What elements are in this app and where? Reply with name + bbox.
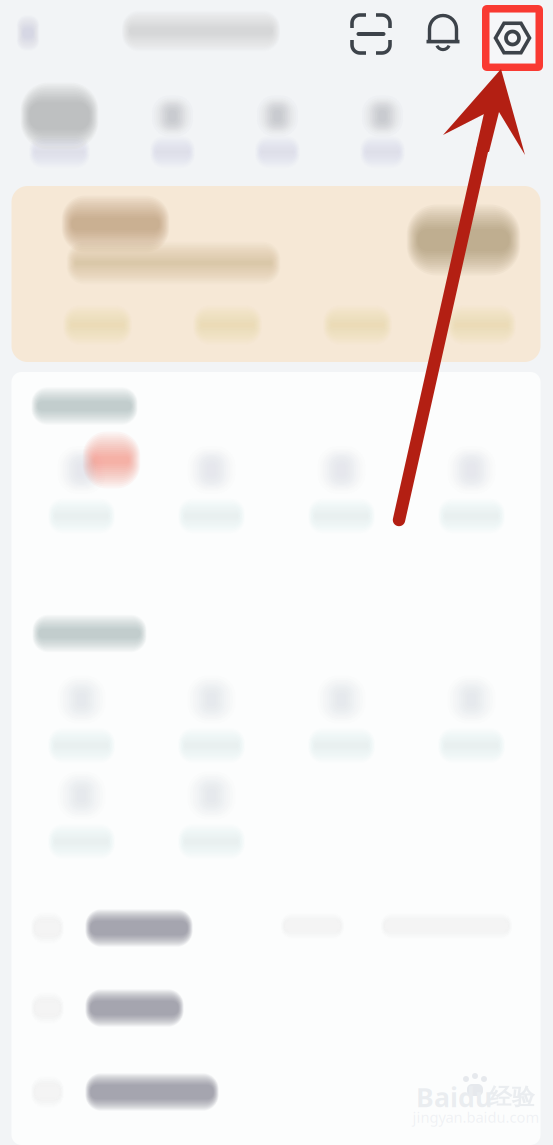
button[interactable] — [148, 434, 274, 534]
button[interactable]: Scan — [343, 6, 399, 62]
button[interactable] — [226, 72, 328, 178]
button[interactable]: Balance — [1, 72, 141, 178]
button[interactable] — [121, 72, 223, 178]
button[interactable] — [278, 434, 404, 534]
button[interactable] — [0, 889, 552, 967]
staticText: Baidu — [416, 1079, 492, 1115]
button[interactable] — [278, 663, 404, 763]
button[interactable] — [18, 759, 144, 859]
button[interactable] — [148, 759, 274, 859]
button[interactable] — [0, 969, 552, 1047]
button[interactable]: Back — [3, 5, 53, 61]
staticText: jingyan.baidu.com — [412, 1107, 539, 1127]
button[interactable] — [18, 434, 144, 534]
button[interactable] — [408, 434, 534, 534]
button[interactable] — [0, 1053, 552, 1131]
button[interactable]: Notifications — [415, 6, 471, 62]
button[interactable] — [331, 72, 433, 178]
button[interactable] — [18, 663, 144, 763]
button[interactable] — [408, 663, 534, 763]
button[interactable] — [148, 663, 274, 763]
staticText: 经验 — [489, 1083, 535, 1111]
button[interactable]: Settings — [481, 4, 543, 71]
